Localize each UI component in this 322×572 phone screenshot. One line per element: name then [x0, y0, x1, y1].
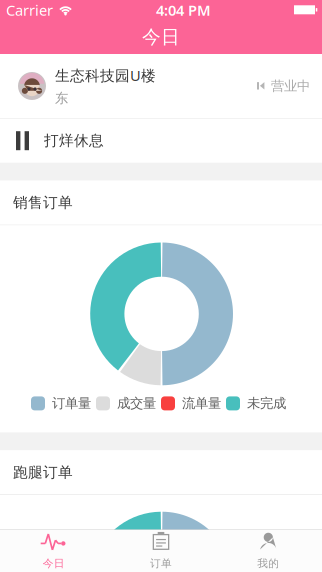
button[interactable]: 我的 — [215, 530, 322, 572]
staticText: 我的 — [257, 557, 279, 570]
staticText: 未完成 — [247, 395, 286, 412]
staticText: Carrier — [6, 0, 53, 20]
staticText: 跑腿订单 — [13, 463, 73, 481]
button[interactable]: 今日 — [0, 530, 107, 572]
staticText: 打烊休息 — [44, 132, 104, 150]
staticText: 销售订单 — [13, 194, 73, 212]
staticText: 订单 — [150, 557, 172, 570]
button[interactable]: 打烊休息 — [0, 119, 322, 163]
staticText: 订单量 — [52, 395, 91, 412]
staticText: 今日 — [43, 557, 65, 570]
staticText: 流单量 — [182, 395, 221, 412]
staticText: 成交量 — [117, 395, 156, 412]
staticText: 营业中 — [271, 78, 310, 94]
staticText: 东 — [55, 90, 68, 106]
staticText: 今日 — [142, 25, 180, 48]
button[interactable]: 订单 — [107, 530, 215, 572]
staticText: 4:04 PM — [156, 0, 211, 20]
button[interactable]: 生态科技园U楼 — [0, 54, 322, 118]
staticText: 生态科技园U楼 — [55, 66, 156, 85]
